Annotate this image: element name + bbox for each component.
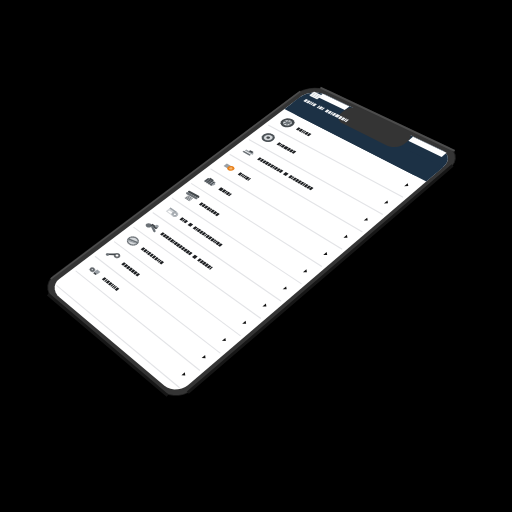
button[interactable]: Kategorien Liste	[0, 0, 512, 512]
